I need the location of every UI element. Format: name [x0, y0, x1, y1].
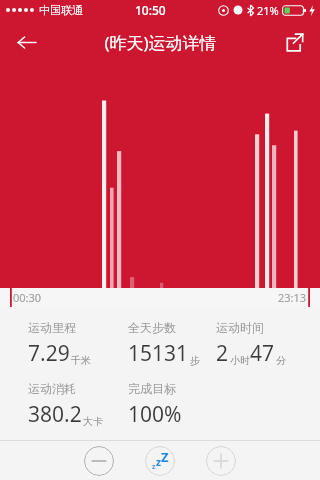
staticText: 21%	[257, 3, 279, 18]
button[interactable]: Back	[6, 22, 46, 62]
staticText: 完成目标	[128, 381, 176, 396]
staticText: 小时	[230, 354, 250, 367]
staticText: 100%	[128, 400, 182, 429]
staticText: z	[156, 455, 161, 469]
staticText: 分	[276, 354, 286, 367]
staticText: 15131	[128, 339, 189, 368]
staticText: 大卡	[83, 415, 103, 428]
button[interactable]: Share	[274, 22, 314, 62]
staticText: (昨天)运动详情	[104, 31, 217, 54]
button[interactable]: Sleep	[145, 446, 175, 476]
staticText: z	[152, 462, 156, 472]
staticText: 23:13	[278, 290, 307, 305]
button[interactable]: Decrease	[84, 446, 114, 476]
button[interactable]: Increase	[206, 446, 236, 476]
staticText: 10:50	[135, 2, 166, 18]
staticText: 运动时间	[216, 320, 264, 335]
staticText: 47	[250, 339, 275, 368]
staticText: 00:30	[13, 290, 42, 305]
staticText: 7.29	[28, 339, 70, 368]
staticText: 全天步数	[128, 320, 176, 335]
staticText: 千米	[71, 354, 91, 367]
staticText: 步	[190, 354, 200, 367]
staticText: 运动里程	[28, 320, 76, 335]
staticText: 中国联通	[39, 3, 83, 17]
staticText: 运动消耗	[28, 381, 76, 396]
staticText: Z	[161, 448, 169, 466]
staticText: 2	[216, 339, 229, 368]
staticText: 380.2	[28, 400, 82, 429]
